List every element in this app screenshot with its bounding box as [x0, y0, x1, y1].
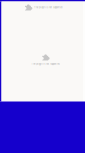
staticText: The plugin is not supported [34, 6, 62, 9]
staticText: The plugin is not supported [31, 62, 59, 65]
